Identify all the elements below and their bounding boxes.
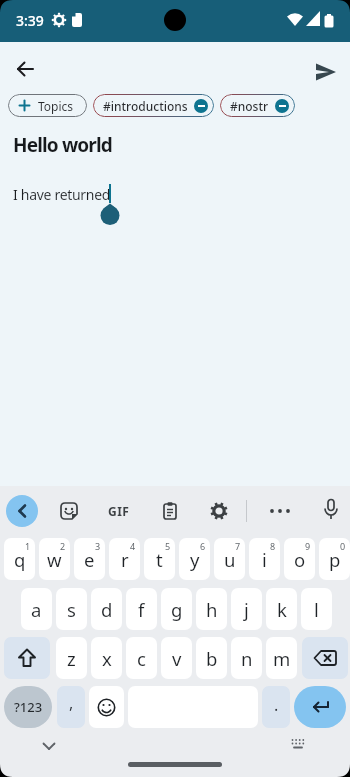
button[interactable]: n xyxy=(231,637,262,679)
button[interactable]: d xyxy=(91,588,122,630)
button[interactable]: m xyxy=(266,637,297,679)
button[interactable]: #nostr xyxy=(220,94,295,117)
button[interactable] xyxy=(206,498,232,524)
button[interactable] xyxy=(8,52,42,86)
staticText: , xyxy=(69,692,74,714)
staticText: e xyxy=(84,547,95,572)
staticText: i xyxy=(262,547,267,572)
button[interactable]: t xyxy=(144,538,175,580)
button[interactable] xyxy=(318,497,344,523)
button[interactable]: p xyxy=(319,538,350,580)
staticText: n xyxy=(241,646,253,671)
button[interactable]: r xyxy=(109,538,140,580)
button[interactable]: i xyxy=(249,538,280,580)
staticText: p xyxy=(329,547,341,572)
staticText: w xyxy=(47,547,62,572)
button[interactable] xyxy=(6,495,38,527)
button[interactable]: e xyxy=(74,538,105,580)
staticText: o xyxy=(294,547,306,572)
button[interactable]: j xyxy=(231,588,262,630)
staticText: j xyxy=(244,597,249,622)
button[interactable] xyxy=(157,498,182,523)
staticText: h xyxy=(206,597,218,622)
button[interactable]: b xyxy=(196,637,227,679)
button[interactable]: , xyxy=(57,686,85,728)
staticText: #nostr xyxy=(230,98,269,114)
staticText: I have returned xyxy=(13,185,111,204)
button[interactable]: #introductions xyxy=(93,94,214,117)
button[interactable]: . xyxy=(262,686,290,728)
button[interactable]: k xyxy=(266,588,297,630)
staticText: v xyxy=(172,646,182,671)
staticText: l xyxy=(314,597,319,622)
staticText: 5 xyxy=(165,540,171,552)
staticText: a xyxy=(31,597,42,622)
button[interactable] xyxy=(294,686,346,728)
staticText: s xyxy=(67,597,76,622)
staticText: b xyxy=(206,646,218,671)
button[interactable] xyxy=(302,637,348,679)
staticText: 1 xyxy=(25,540,31,552)
button[interactable] xyxy=(89,686,124,728)
button[interactable]: o xyxy=(284,538,315,580)
staticText: GIF xyxy=(108,503,130,519)
button[interactable] xyxy=(266,498,294,524)
staticText: ?123 xyxy=(14,698,43,716)
button[interactable]: v xyxy=(161,637,192,679)
button[interactable]: z xyxy=(56,637,87,679)
button[interactable]: x xyxy=(91,637,122,679)
staticText: 6 xyxy=(200,540,206,552)
staticText: 8 xyxy=(270,540,276,552)
staticText: 0 xyxy=(340,540,346,552)
staticText: t xyxy=(156,547,163,572)
staticText: y xyxy=(190,547,200,572)
button[interactable] xyxy=(308,54,344,90)
staticText: 4 xyxy=(130,540,136,552)
button[interactable] xyxy=(286,734,310,754)
staticText: Topics xyxy=(38,98,74,114)
button[interactable]: q xyxy=(4,538,35,580)
staticText: d xyxy=(101,597,113,622)
staticText: c xyxy=(137,646,146,671)
button[interactable]: GIF xyxy=(104,498,134,524)
staticText: k xyxy=(277,597,287,622)
staticText: #introductions xyxy=(103,98,188,114)
staticText: g xyxy=(171,597,183,622)
button[interactable]: h xyxy=(196,588,227,630)
button[interactable]: s xyxy=(56,588,87,630)
button[interactable] xyxy=(4,637,50,679)
button[interactable]: l xyxy=(301,588,332,630)
button[interactable]: a xyxy=(21,588,52,630)
staticText: Hello world xyxy=(13,132,112,158)
staticText: 3:39 xyxy=(16,11,44,30)
button[interactable]: w xyxy=(39,538,70,580)
button[interactable]: f xyxy=(126,588,157,630)
staticText: 3 xyxy=(95,540,101,552)
button[interactable]: Topics xyxy=(8,94,87,117)
button[interactable]: u xyxy=(214,538,245,580)
staticText: z xyxy=(67,646,76,671)
staticText: r xyxy=(121,547,129,572)
button[interactable]: g xyxy=(161,588,192,630)
staticText: 2 xyxy=(60,540,66,552)
staticText: . xyxy=(274,694,279,716)
staticText: u xyxy=(224,547,236,572)
staticText: 9 xyxy=(305,540,311,552)
staticText: f xyxy=(138,597,145,622)
staticText: q xyxy=(14,547,26,572)
staticText: 7 xyxy=(235,540,241,552)
button[interactable] xyxy=(36,736,62,756)
button[interactable]: y xyxy=(179,538,210,580)
button[interactable]: ?123 xyxy=(4,686,52,728)
staticText: m xyxy=(273,646,291,671)
button[interactable] xyxy=(56,498,82,524)
button[interactable]: c xyxy=(126,637,157,679)
staticText: x xyxy=(102,646,112,671)
